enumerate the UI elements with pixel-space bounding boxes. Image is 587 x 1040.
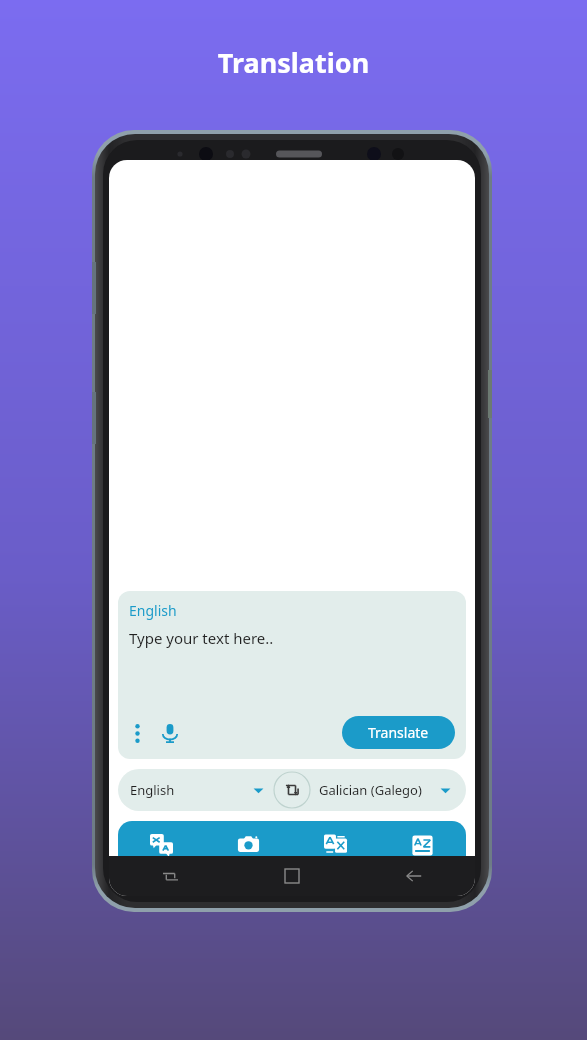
button[interactable]: Voice input bbox=[155, 718, 185, 748]
staticText: Translation bbox=[0, 44, 587, 81]
button[interactable]: Swap languages bbox=[273, 771, 311, 809]
button[interactable]: Recents bbox=[109, 856, 231, 896]
button[interactable]: English bbox=[118, 769, 273, 811]
button[interactable]: Translate bbox=[342, 716, 455, 749]
button[interactable]: Translate bbox=[118, 821, 205, 888]
staticText: Type your text here.. bbox=[129, 628, 274, 648]
button[interactable]: Dictionay bbox=[379, 821, 466, 888]
button[interactable]: More options bbox=[129, 719, 145, 747]
staticText: Galician (Galego) bbox=[319, 781, 422, 799]
button[interactable]: Galician (Galego) bbox=[311, 769, 466, 811]
button[interactable]: Camera bbox=[205, 821, 292, 888]
staticText: Translate bbox=[368, 723, 429, 742]
button[interactable]: Home bbox=[231, 856, 353, 896]
button[interactable]: Conversation bbox=[292, 821, 379, 888]
staticText: English bbox=[130, 781, 175, 799]
button[interactable]: Back bbox=[353, 856, 475, 896]
staticText: English bbox=[129, 601, 177, 620]
staticText: Translate bbox=[140, 862, 184, 876]
staticText: Dictionay bbox=[401, 862, 445, 876]
